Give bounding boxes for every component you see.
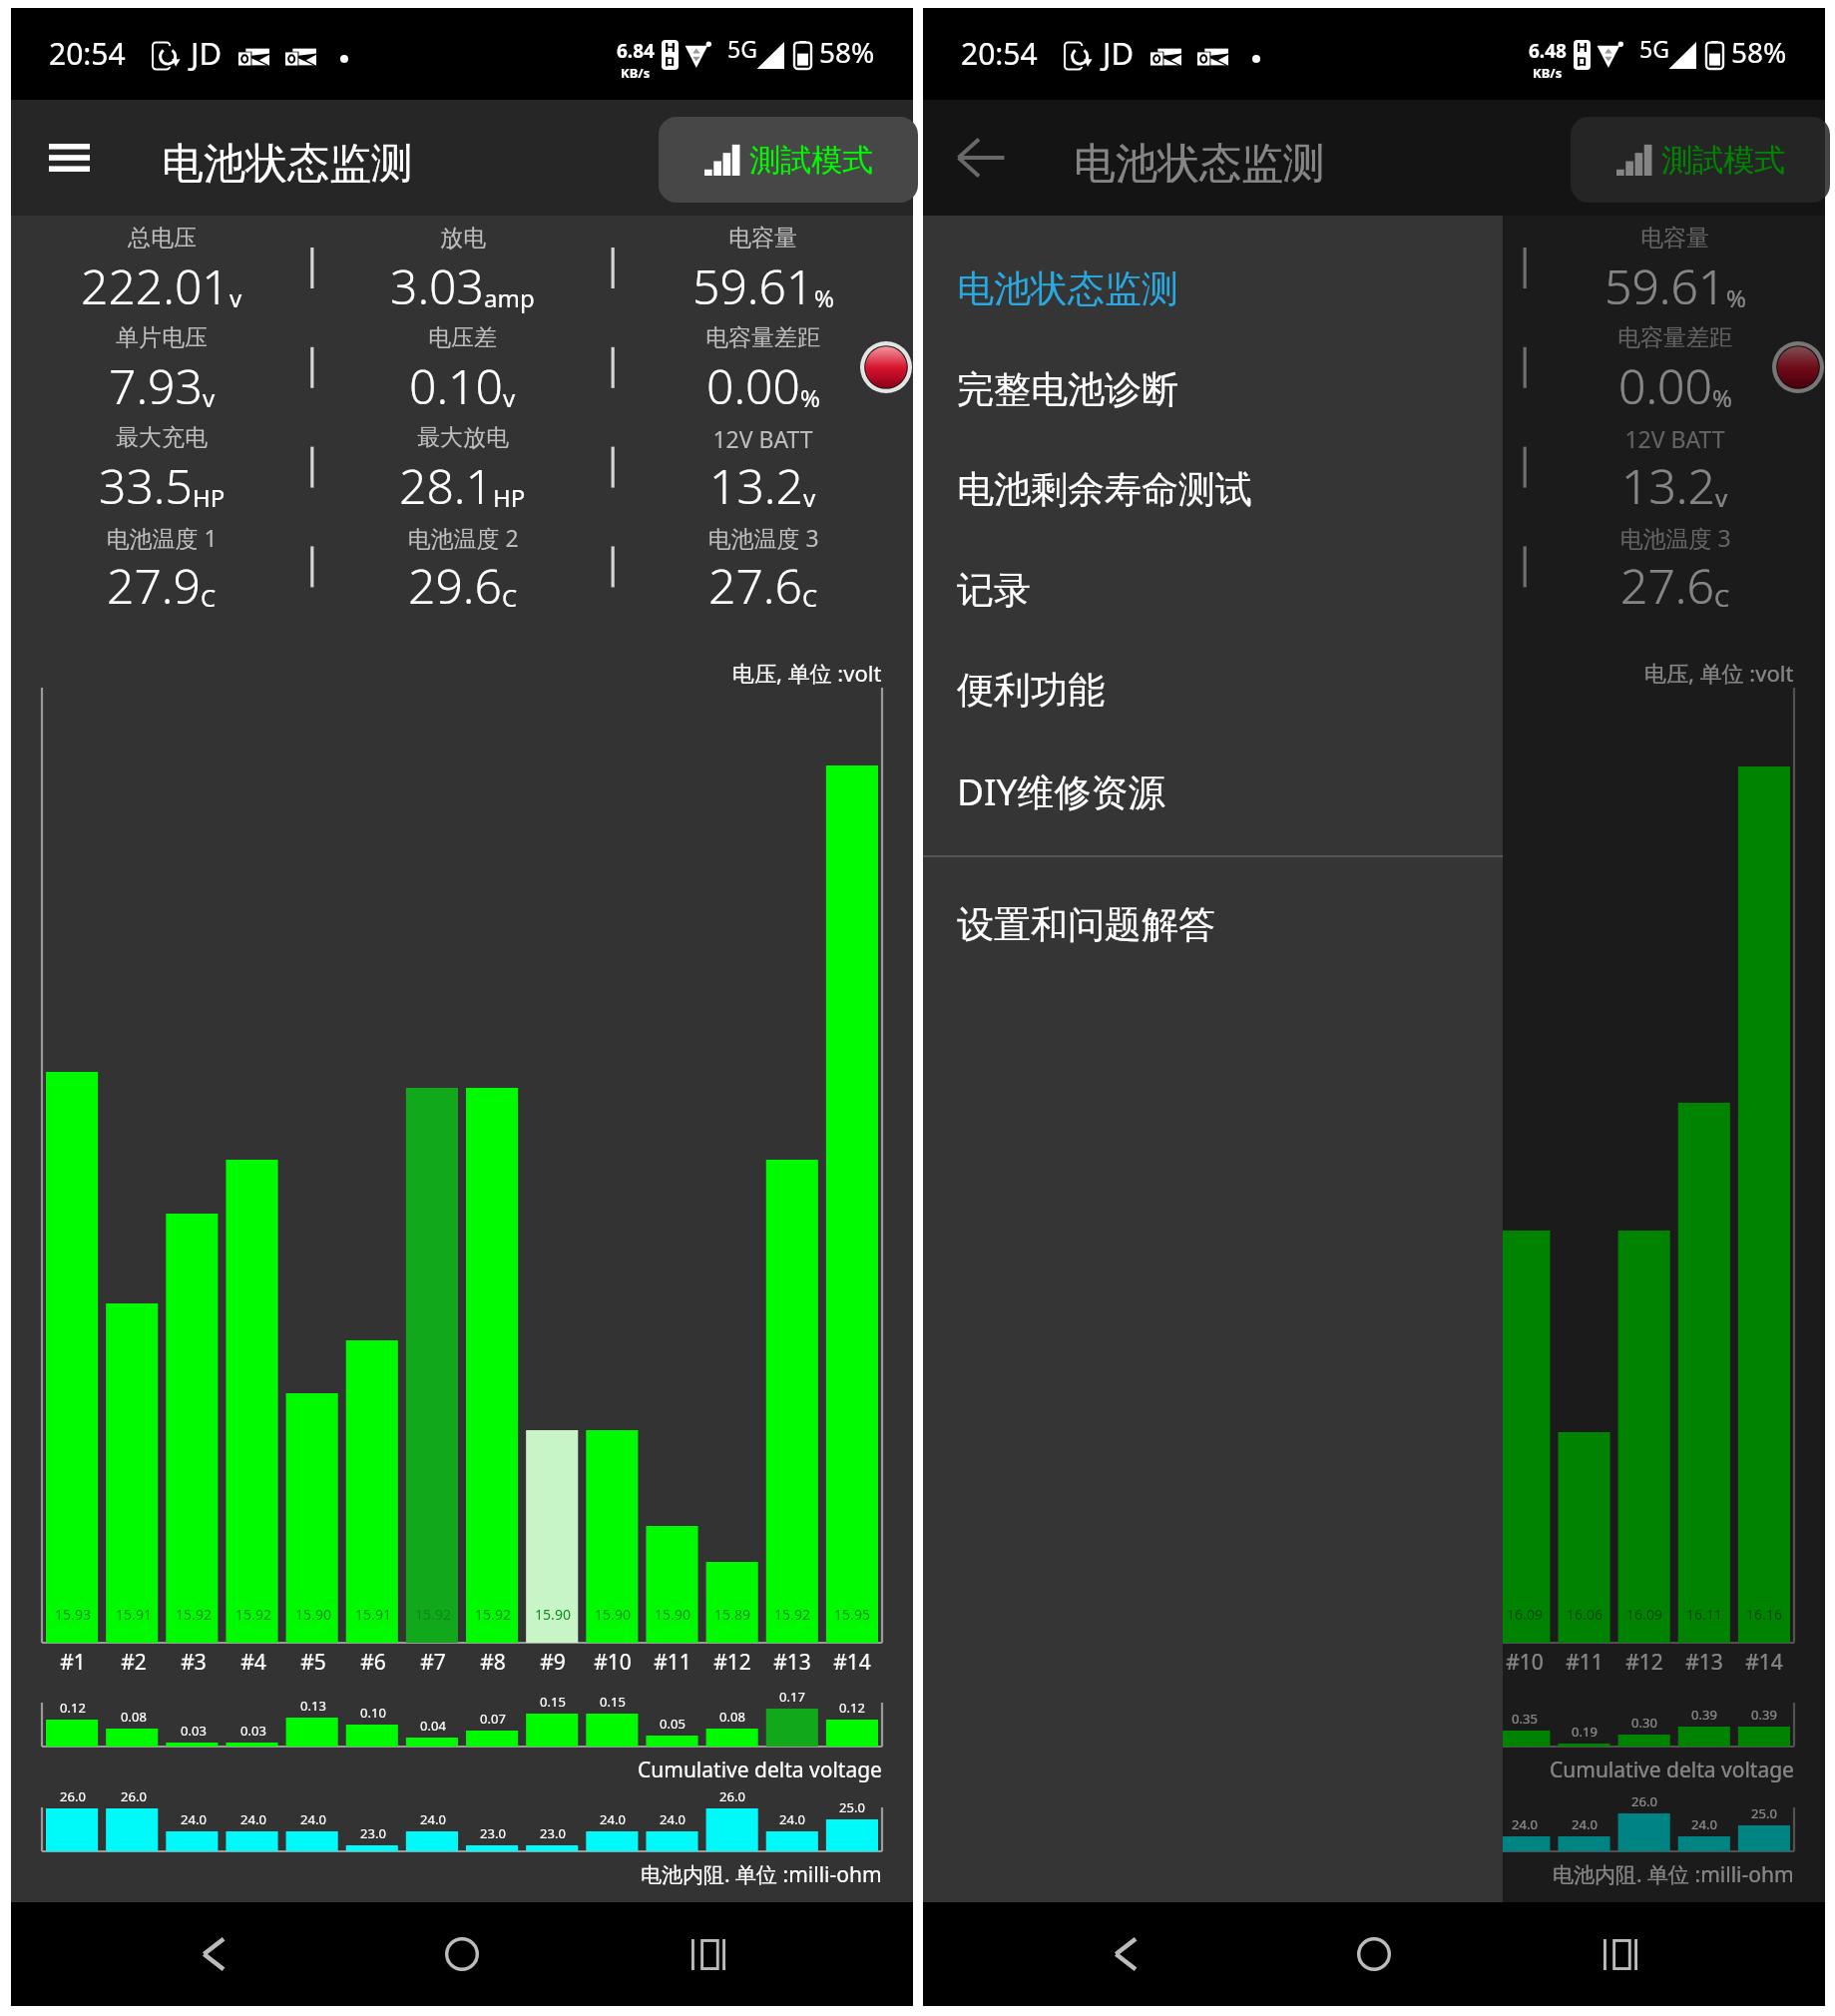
staticText: 放电 (440, 224, 486, 252)
button[interactable]: Home (401, 1902, 523, 2006)
staticText: #2 (121, 1648, 147, 1677)
staticText: % (1726, 281, 1746, 314)
button[interactable]: 完整电池诊断 (923, 339, 1503, 439)
staticText: 0.39 (1751, 1706, 1777, 1724)
staticText: 24.0 (1512, 1815, 1538, 1833)
button[interactable]: 电池状态监测 (923, 239, 1503, 338)
staticText: 0.12 (839, 1699, 865, 1717)
staticText: 24.0 (240, 1810, 266, 1828)
staticText: 28.1 (399, 453, 493, 518)
staticText: 0.05 (660, 1715, 686, 1733)
staticText: 0.15 (540, 1693, 566, 1711)
staticText: 12V BATT (1624, 423, 1725, 454)
staticText: 26.0 (60, 1787, 86, 1805)
button[interactable]: 设置和问题解答 (923, 874, 1503, 974)
staticText: #6 (360, 1648, 386, 1677)
staticText: 0.12 (60, 1699, 86, 1717)
button[interactable]: 电池剩余寿命测试 (923, 439, 1503, 539)
staticText: 25.0 (839, 1798, 865, 1816)
staticText: 13.2 (1621, 453, 1715, 518)
staticText: % (800, 381, 820, 414)
button[interactable]: DIY维修资源 (923, 741, 1503, 840)
staticText: 单片电压 (116, 323, 208, 352)
staticText: 24.0 (1691, 1815, 1717, 1833)
button[interactable]: Back (153, 1902, 274, 2006)
staticText: 16.09 (1507, 1605, 1543, 1624)
staticText: 0.30 (1631, 1714, 1657, 1732)
staticText: 25.0 (1751, 1804, 1777, 1822)
staticText: 27.6 (1620, 553, 1714, 618)
staticText: 27.6 (708, 553, 802, 618)
staticText: 最大充电 (116, 423, 208, 452)
staticText: 6.84 (617, 38, 655, 64)
button[interactable]: Back (1065, 1902, 1186, 2006)
staticText: #5 (300, 1648, 326, 1677)
button[interactable]: Open navigation menu (11, 110, 127, 206)
staticText: C (201, 581, 217, 614)
staticText: 最大放电 (417, 423, 509, 452)
staticText: % (1712, 381, 1732, 414)
staticText: 15.90 (595, 1605, 631, 1624)
staticText: #14 (833, 1648, 871, 1677)
staticText: 总电压 (128, 224, 197, 252)
staticText: 电池内阻. 单位 :milli-ohm (1553, 1860, 1794, 1889)
staticText: 0.03 (181, 1722, 207, 1740)
staticText: JD (1103, 32, 1135, 74)
staticText: #13 (1685, 1648, 1723, 1677)
staticText: 7.93 (109, 353, 203, 418)
staticText: 58% (819, 33, 875, 71)
staticText: 27.9 (107, 553, 201, 618)
staticText: 15.93 (55, 1605, 91, 1624)
staticText: 23.0 (360, 1824, 386, 1842)
staticText: 便利功能 (957, 667, 1105, 714)
staticText: 0.10 (360, 1704, 386, 1722)
staticText: C (502, 581, 518, 614)
staticText: 測試模式 (749, 141, 873, 180)
staticText: 电容量 (728, 224, 797, 252)
button[interactable]: 測試模式 (1571, 117, 1830, 203)
button[interactable]: 便利功能 (923, 640, 1503, 740)
button[interactable]: 測試模式 (659, 117, 918, 203)
staticText: 15.92 (774, 1605, 810, 1624)
staticText: 电池状态监测 (957, 265, 1178, 312)
staticText: 0.15 (600, 1693, 626, 1711)
staticText: 15.95 (834, 1605, 870, 1624)
staticText: 电池状态监测 (1074, 138, 1325, 191)
staticText: 24.0 (1572, 1815, 1598, 1833)
button[interactable]: 记录 (923, 540, 1503, 640)
staticText: #11 (654, 1648, 691, 1677)
staticText: 33.5 (1011, 453, 1105, 518)
staticText: 0.35 (1512, 1710, 1538, 1728)
staticText: 15.92 (415, 1605, 451, 1624)
staticText: 222.01 (993, 253, 1142, 318)
button[interactable]: Home (1313, 1902, 1435, 2006)
staticText: % (814, 281, 834, 314)
staticText: 33.5 (99, 453, 193, 518)
staticText: 59.61 (1605, 253, 1726, 318)
staticText: v (203, 381, 216, 414)
button[interactable]: Recent apps (648, 1902, 769, 2006)
staticText: 5G (727, 33, 757, 64)
staticText: 15.90 (655, 1605, 690, 1624)
staticText: 0.08 (719, 1708, 745, 1726)
staticText: 5G (1639, 33, 1669, 64)
button[interactable]: Recent apps (1560, 1902, 1681, 2006)
staticText: 电压差 (428, 323, 497, 352)
staticText: #7 (420, 1648, 446, 1677)
staticText: 26.0 (121, 1787, 147, 1805)
button[interactable]: Back (923, 110, 1039, 206)
